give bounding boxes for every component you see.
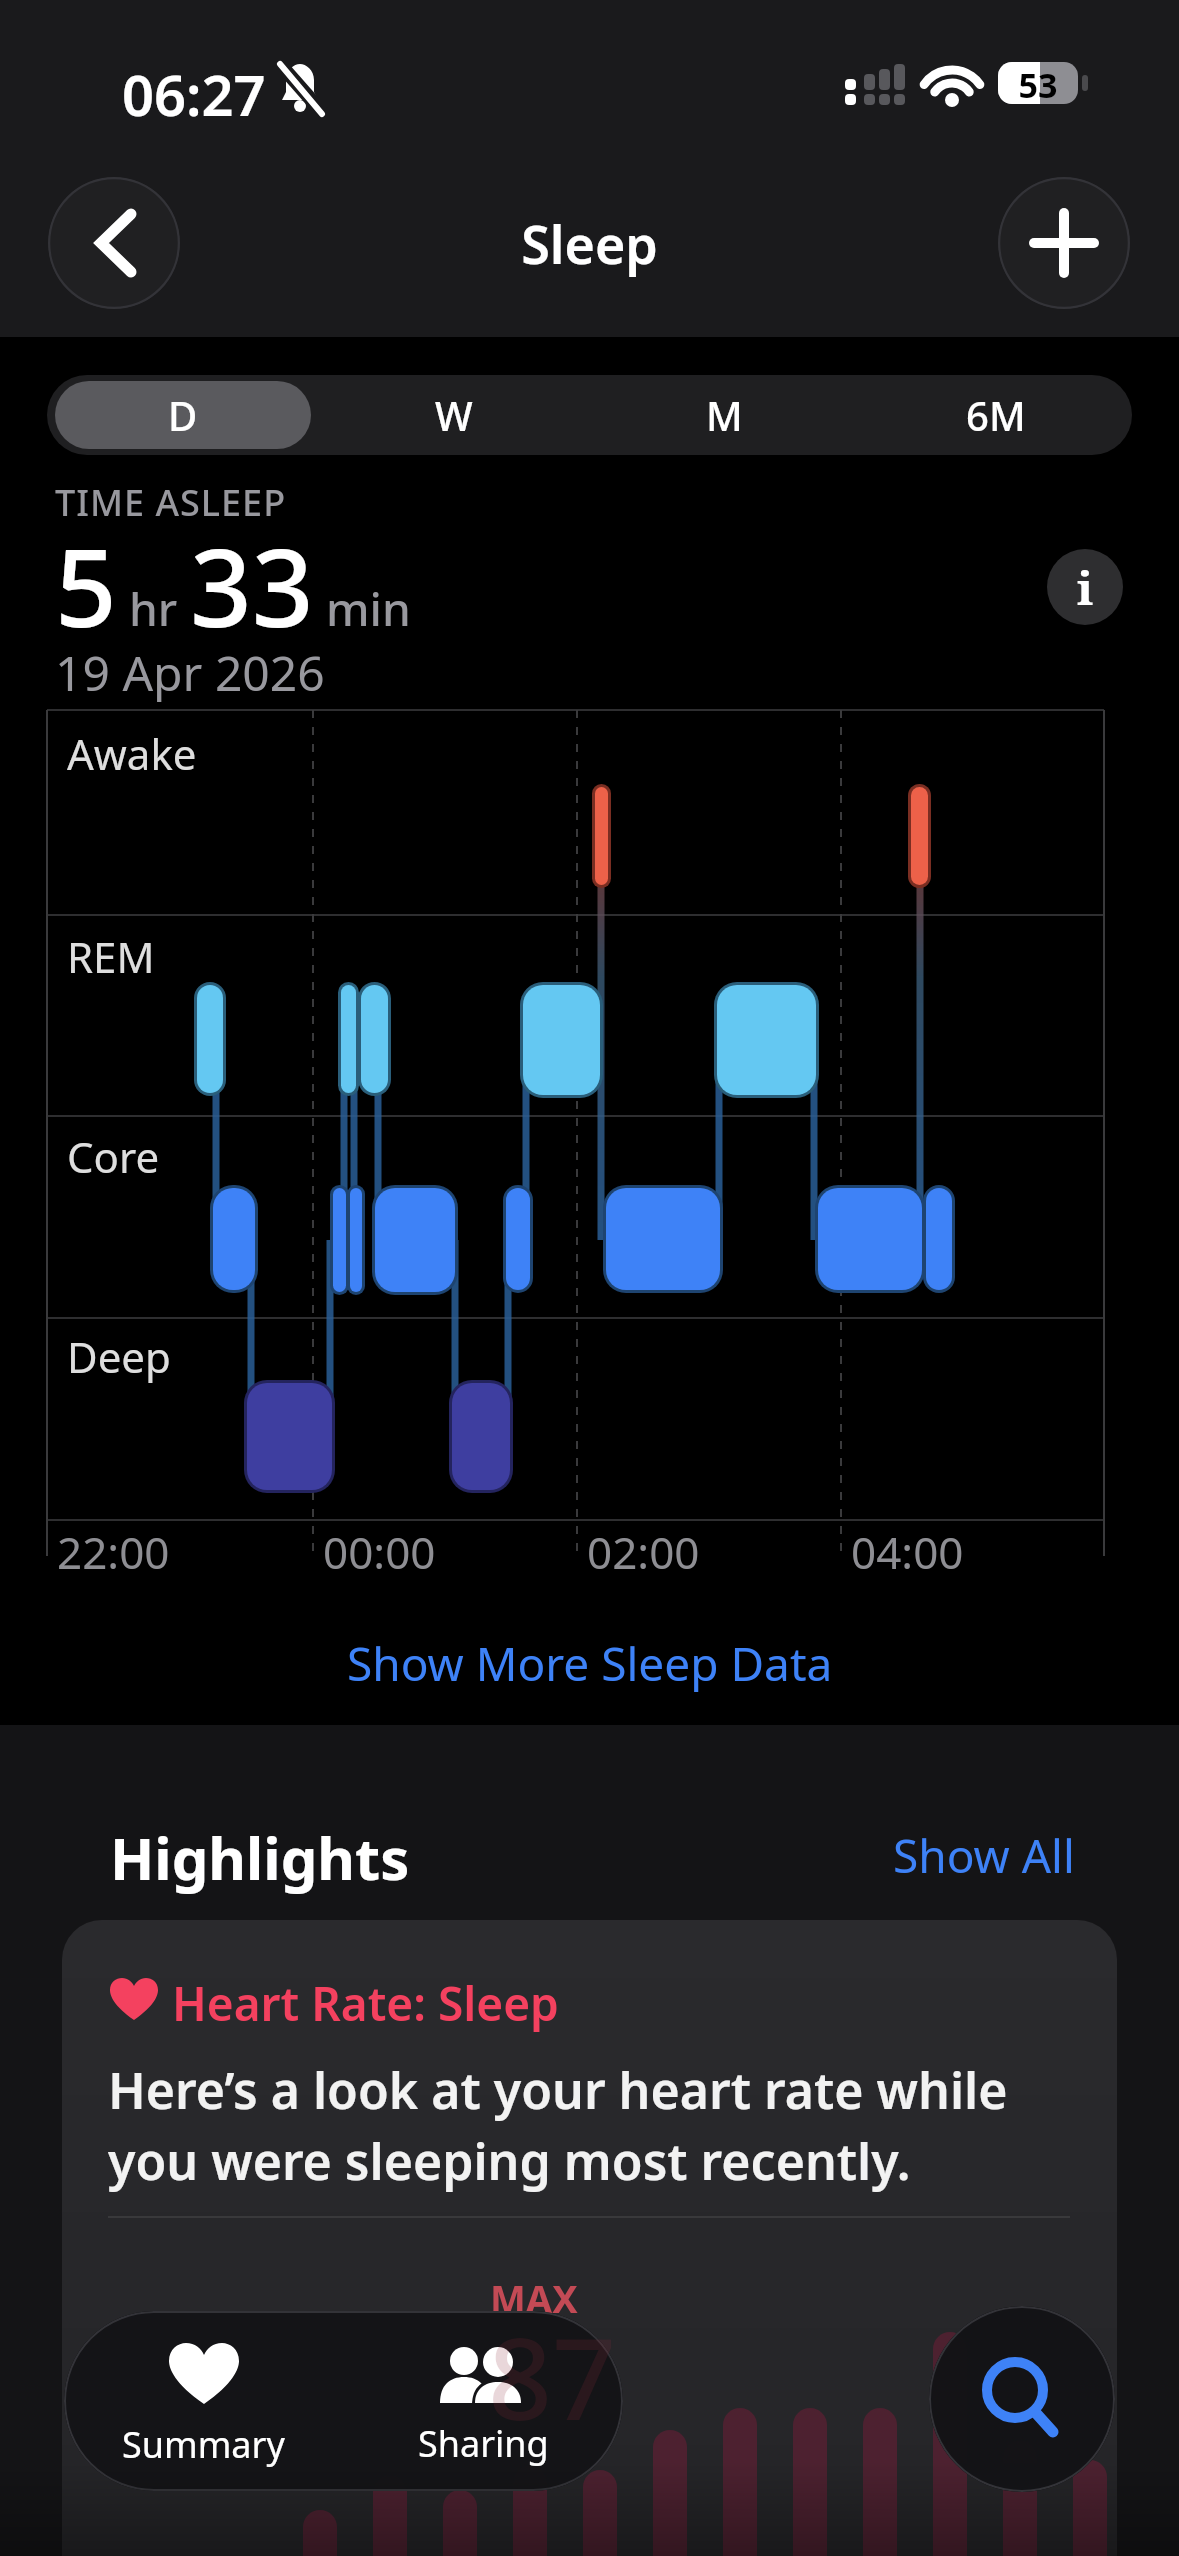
button[interactable]: Sharing (343, 2311, 623, 2491)
button[interactable]: Heart Rate: Sleep (62, 1920, 1117, 2556)
button[interactable] (998, 177, 1130, 309)
staticText: MAX (490, 2272, 578, 2324)
button[interactable]: W (318, 375, 589, 455)
staticText: Show All (893, 1824, 1075, 1887)
staticText: D (168, 388, 198, 442)
staticText: Summary (122, 2420, 285, 2469)
staticText: 04:00 (851, 1522, 964, 1582)
staticText: min (314, 577, 411, 640)
button[interactable]: Show More Sleep Data (280, 1625, 900, 1701)
button[interactable]: i (1047, 549, 1123, 625)
staticText: Sharing (418, 2419, 549, 2468)
staticText: Sleep (0, 208, 1179, 279)
button[interactable] (48, 177, 180, 309)
button[interactable]: Summary (64, 2311, 343, 2491)
staticText: M (706, 388, 743, 442)
staticText: Here’s a look at your heart rate while y… (108, 2056, 1008, 2195)
button[interactable]: D (47, 375, 318, 455)
staticText: W (435, 388, 473, 442)
staticText: 06:27 (122, 56, 266, 132)
staticText: Awake (67, 725, 197, 782)
staticText: 22:00 (57, 1522, 170, 1582)
staticText: 6M (966, 388, 1026, 442)
button[interactable]: M (589, 375, 860, 455)
staticText: 33 (190, 512, 314, 659)
staticText: Heart Rate: Sleep (172, 1972, 559, 2035)
staticText: hr (117, 577, 190, 640)
staticText: Show More Sleep Data (347, 1632, 833, 1695)
staticText: i (1077, 556, 1094, 619)
button[interactable] (929, 2306, 1115, 2492)
staticText: Deep (67, 1328, 171, 1385)
staticText: 87 (488, 2300, 617, 2453)
staticText: 00:00 (323, 1522, 436, 1582)
staticText: TIME ASLEEP (55, 478, 287, 527)
staticText: 02:00 (587, 1522, 700, 1582)
staticText: 19 Apr 2026 (55, 640, 325, 705)
staticText: 53 (998, 62, 1078, 108)
staticText: Core (67, 1128, 160, 1185)
staticText: Highlights (110, 1818, 410, 1897)
button[interactable]: 6M (860, 375, 1131, 455)
button[interactable]: Show All (865, 1820, 1075, 1890)
staticText: 5 (55, 512, 117, 659)
staticText: REM (67, 928, 155, 985)
